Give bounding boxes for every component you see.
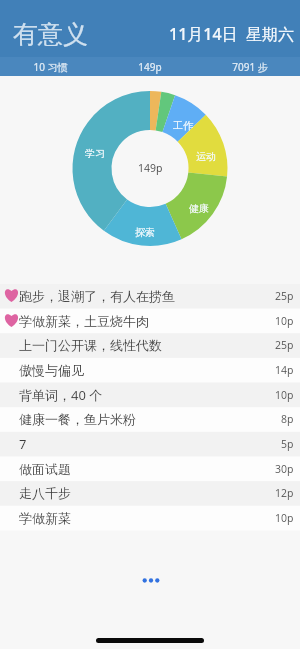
button[interactable]: 背单词，40 个 [0,383,300,408]
staticText: 运动 [196,150,216,163]
staticText: 11月14日 星期六 [169,23,294,45]
other: Home indicator [96,638,204,643]
staticText: 25p [275,338,294,352]
staticText: 学做新菜，土豆烧牛肉 [19,313,149,329]
staticText: 健康一餐，鱼片米粉 [19,411,136,427]
staticText: 12p [275,486,294,500]
staticText: 学习 [85,147,105,160]
staticText: 傲慢与偏见 [19,362,84,378]
staticText: 有意义 [13,19,88,50]
staticText: 8p [281,412,294,426]
staticText: 健康 [189,202,209,215]
button[interactable]: 健康一餐，鱼片米粉 [0,407,300,432]
staticText: 5p [281,437,294,451]
button[interactable]: 7 [0,432,300,457]
staticText: 10p [275,314,294,328]
staticText: 跑步，退潮了，有人在捞鱼 [19,288,175,304]
button[interactable]: Loading more [142,574,164,587]
staticText: 工作 [173,119,193,132]
button[interactable]: 学做新菜 [0,506,300,531]
button[interactable]: 7091 步 [200,57,300,76]
staticText: 14p [275,363,294,377]
staticText: 做面试题 [19,461,71,477]
button[interactable]: 傲慢与偏见 [0,358,300,383]
button[interactable]: 走八千步 [0,481,300,506]
staticText: 10 习惯 [33,60,68,74]
staticText: 149p [138,60,162,74]
staticText: 上一门公开课，线性代数 [19,337,162,353]
staticText: 探索 [135,226,155,239]
button[interactable]: 149p [100,57,200,76]
staticText: 学做新菜 [19,510,71,526]
staticText: 背单词，40 个 [19,386,103,404]
button[interactable]: 上一门公开课，线性代数 [0,333,300,358]
staticText: 149p [138,161,163,175]
staticText: 7 [19,435,27,453]
button[interactable]: 10 习惯 [0,57,100,76]
staticText: 30p [275,462,294,476]
staticText: 走八千步 [19,485,71,501]
staticText: 25p [275,289,294,303]
button[interactable]: 跑步，退潮了，有人在捞鱼 [0,284,300,309]
button[interactable]: 做面试题 [0,457,300,482]
staticText: 7091 步 [232,60,268,74]
staticText: 10p [275,388,294,402]
staticText: 10p [275,511,294,525]
button[interactable]: 学做新菜，土豆烧牛肉 [0,309,300,334]
